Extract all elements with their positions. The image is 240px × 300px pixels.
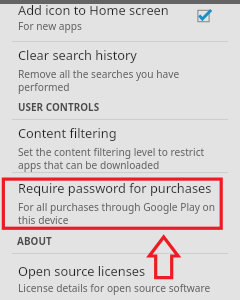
staticText: Clear search history bbox=[18, 46, 137, 63]
staticText: For new apps bbox=[18, 19, 82, 33]
button[interactable]: Open source licenses bbox=[0, 261, 240, 300]
button[interactable]: Require password for purchases bbox=[0, 180, 240, 226]
staticText: Open source licenses bbox=[18, 262, 146, 279]
staticText: Set the content filtering level to restr… bbox=[18, 145, 205, 172]
button[interactable]: Clear search history bbox=[0, 47, 240, 93]
staticText: License details for open source software bbox=[18, 281, 211, 295]
staticText: Require password for purchases bbox=[18, 179, 212, 196]
button[interactable]: Add icon to Home screen checkbox bbox=[192, 5, 216, 29]
staticText: Remove all the searches you have perform… bbox=[18, 67, 180, 94]
button[interactable]: Content filtering bbox=[0, 125, 240, 171]
staticText: USER CONTROLS bbox=[18, 100, 100, 113]
button[interactable]: Add icon to Home screen bbox=[0, 3, 240, 40]
staticText: ABOUT bbox=[17, 234, 52, 247]
staticText: Add icon to Home screen bbox=[18, 1, 169, 18]
staticText: Content filtering bbox=[18, 124, 117, 141]
staticText: For all purchases through Google Play on… bbox=[18, 200, 216, 227]
